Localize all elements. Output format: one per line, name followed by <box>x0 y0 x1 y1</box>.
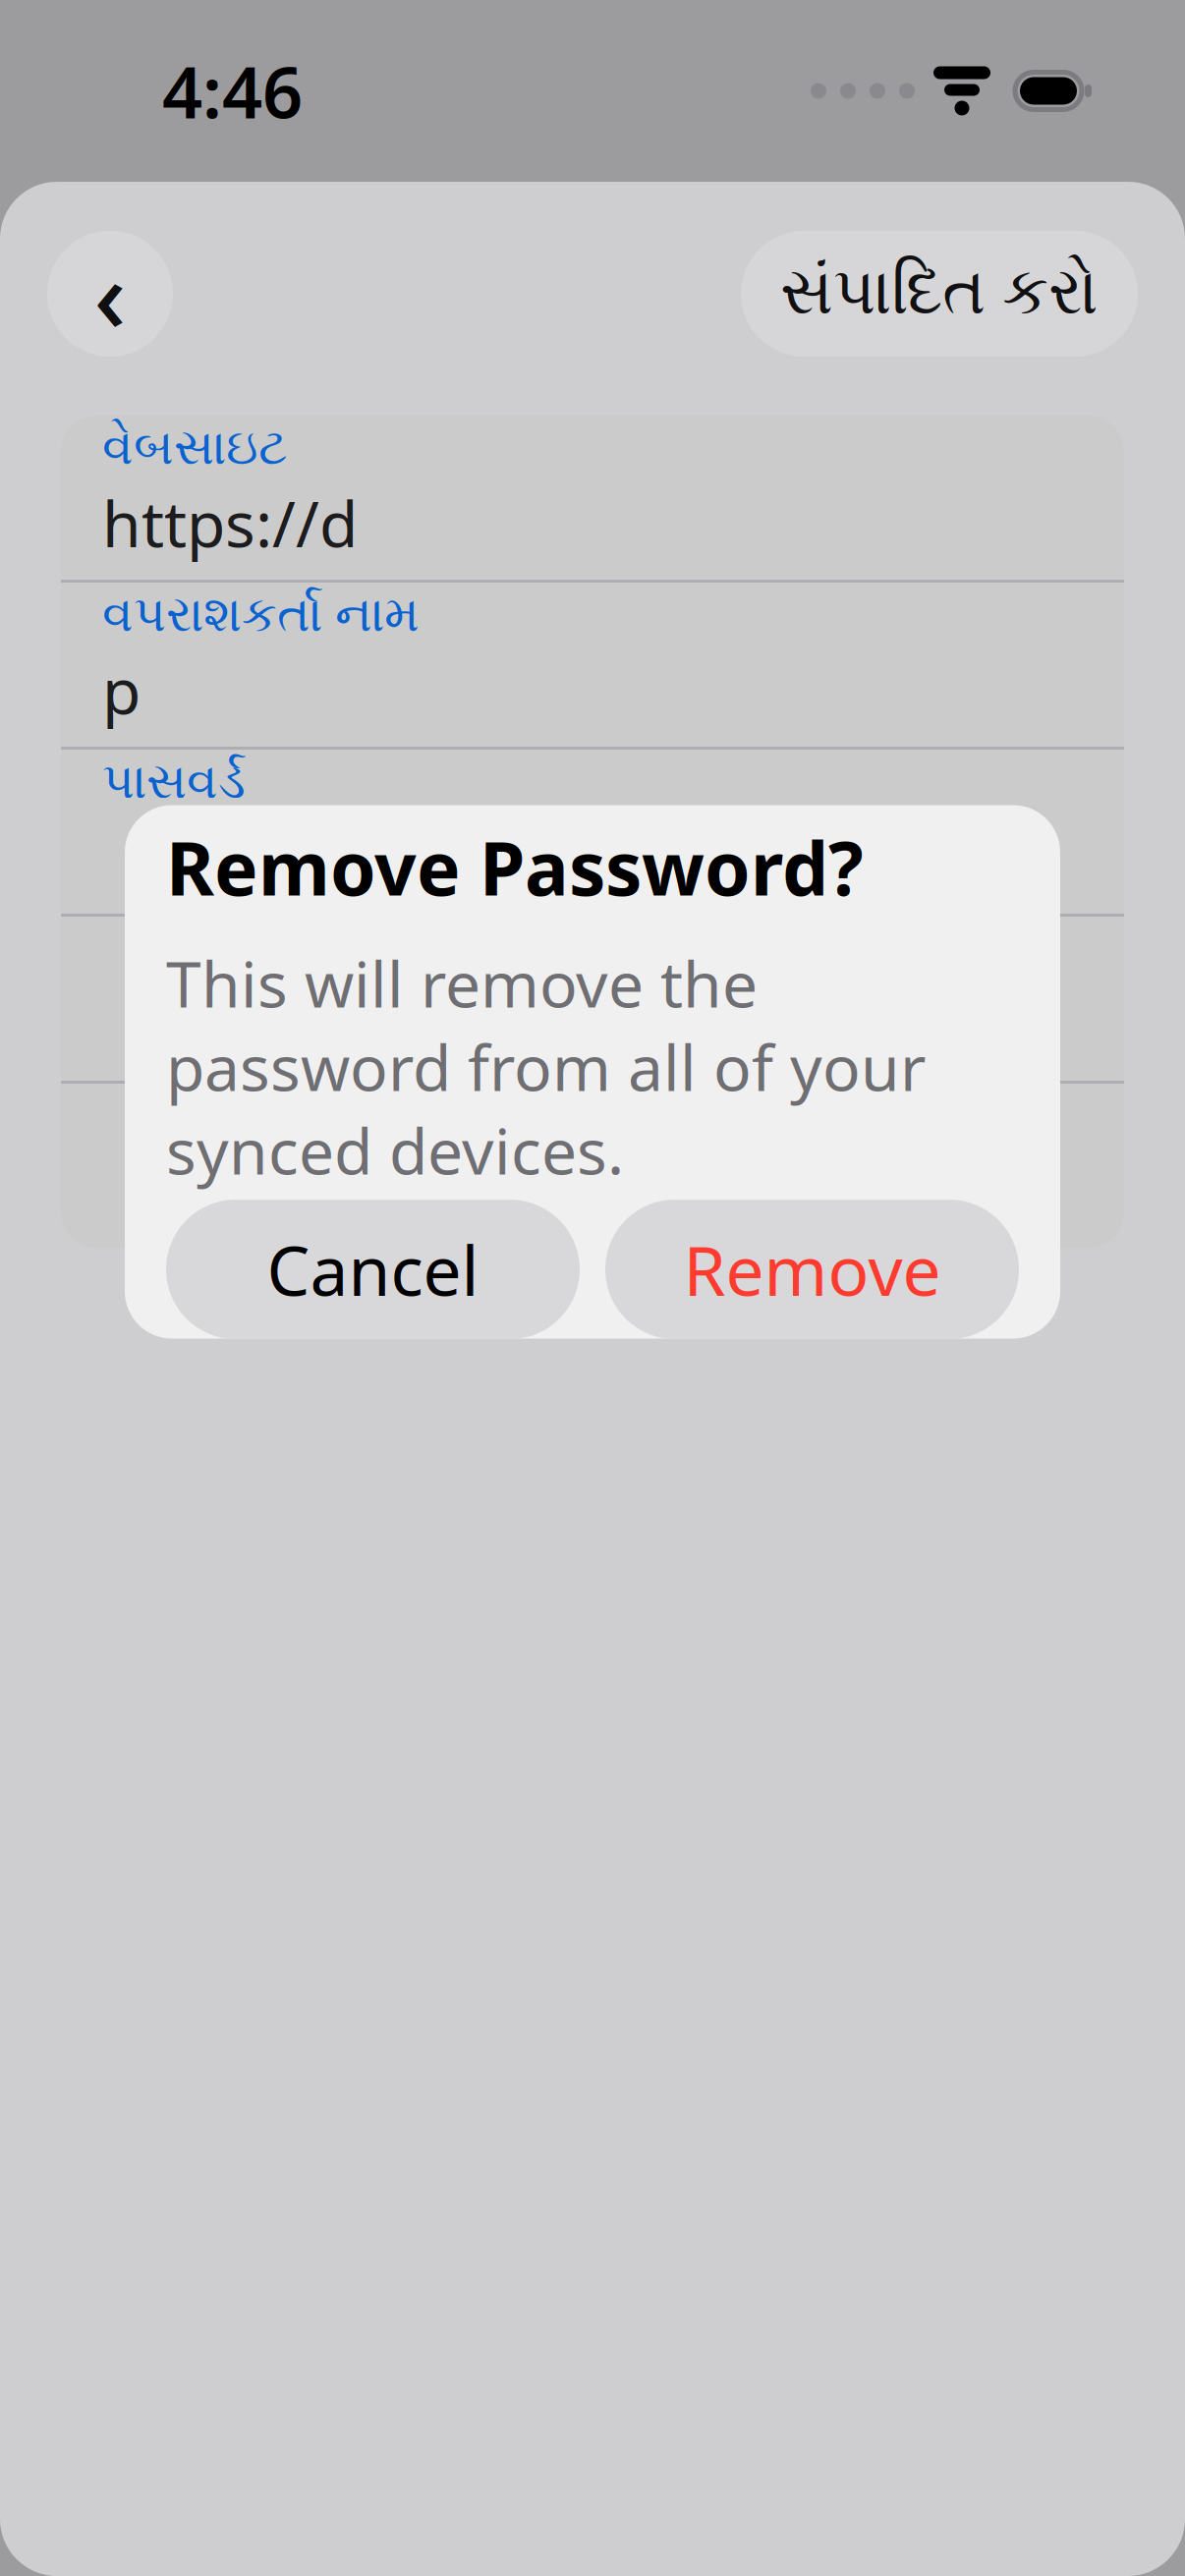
staticText: સંપાદિત કરો <box>780 262 1099 326</box>
staticText: વેબસાઇટ <box>102 425 287 473</box>
button[interactable]: વપરાશકર્તા નામ <box>61 583 1124 750</box>
staticText: Cancel <box>267 1224 479 1315</box>
staticText: ‹ <box>94 228 126 360</box>
staticText: Remove <box>683 1224 941 1315</box>
button[interactable] <box>61 917 1124 1084</box>
staticText: This will remove the password from all o… <box>166 941 926 1192</box>
staticText: Remove Password? <box>166 818 864 916</box>
button[interactable] <box>61 1084 1124 1248</box>
staticText: વપરાશકર્તા નામ <box>102 592 420 640</box>
button[interactable]: Cancel <box>166 1200 580 1339</box>
button[interactable]: Back <box>47 231 173 357</box>
button[interactable]: પાસવર્ડ <box>61 750 1124 917</box>
staticText: પાસવર્ડ <box>102 759 246 807</box>
staticText: https://d <box>102 481 358 565</box>
staticText: p <box>102 648 141 732</box>
button[interactable]: સંપાદિત કરો <box>741 231 1138 357</box>
button[interactable]: વેબસાઇટ <box>61 416 1124 583</box>
button[interactable]: Remove <box>605 1200 1019 1339</box>
staticText: 4:46 <box>162 44 303 138</box>
